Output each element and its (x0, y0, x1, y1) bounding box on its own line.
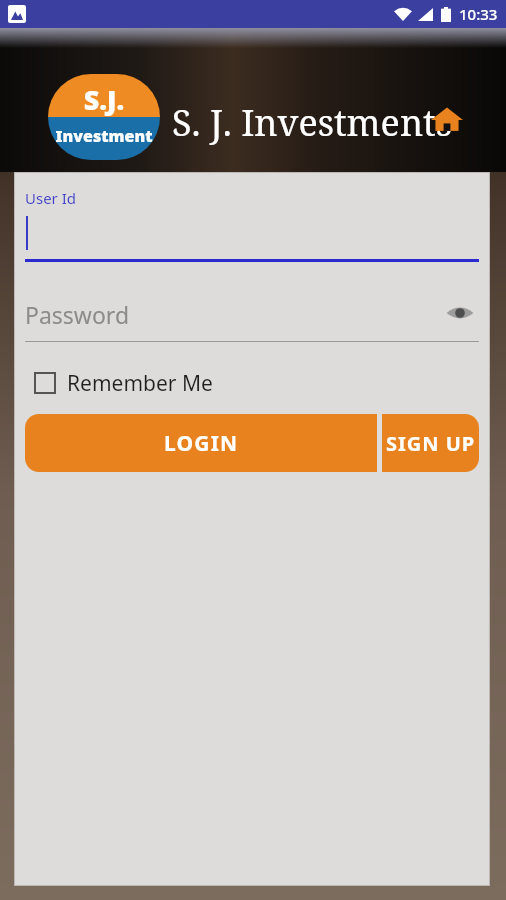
button[interactable]: Password (25, 296, 479, 342)
staticText: User Id (25, 188, 77, 208)
staticText: LOGIN (164, 429, 239, 458)
staticText: SIGN UP (386, 430, 476, 457)
button[interactable]: Remember Me (34, 366, 213, 400)
staticText: Remember Me (67, 369, 213, 398)
button[interactable]: LOGIN (25, 414, 377, 472)
staticText: Investment (48, 125, 160, 147)
staticText: 10:33 (459, 4, 498, 24)
staticText: Password (25, 299, 130, 330)
button[interactable]: Show password (445, 298, 475, 328)
button[interactable]: Home (430, 102, 464, 136)
button[interactable]: SIGN UP (382, 414, 479, 472)
button[interactable]: User Id (25, 186, 479, 262)
staticText: S.J. (48, 81, 160, 118)
staticText: S. J. Investments (172, 98, 453, 147)
